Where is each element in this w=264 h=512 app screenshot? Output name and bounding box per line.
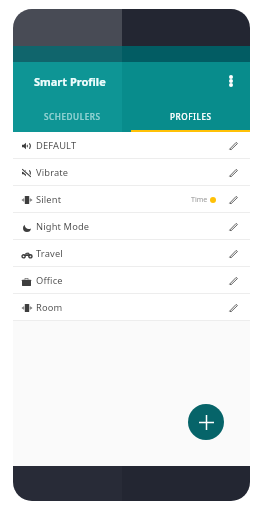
button[interactable]: PROFILES bbox=[131, 100, 250, 132]
staticText: Office bbox=[36, 274, 63, 287]
staticText: Travel bbox=[36, 247, 63, 260]
staticText: Time bbox=[191, 195, 208, 205]
staticText: Vibrate bbox=[36, 166, 69, 179]
staticText: DEFAULT bbox=[36, 139, 77, 152]
button[interactable]: Add profile bbox=[188, 404, 224, 440]
button[interactable]: DEFAULT bbox=[13, 132, 250, 159]
staticText: Night Mode bbox=[36, 220, 90, 233]
button[interactable]: Night Mode bbox=[13, 213, 250, 240]
button[interactable]: More options bbox=[220, 70, 242, 92]
button[interactable]: Travel bbox=[13, 240, 250, 267]
staticText: Room bbox=[36, 301, 63, 314]
staticText: Smart Profile bbox=[34, 74, 106, 89]
button[interactable]: Room bbox=[13, 294, 250, 321]
button[interactable]: Vibrate bbox=[13, 159, 250, 186]
button[interactable]: SCHEDULERS bbox=[13, 100, 131, 132]
button[interactable]: Office bbox=[13, 267, 250, 294]
button[interactable]: Silent bbox=[13, 186, 250, 213]
staticText: PROFILES bbox=[170, 111, 212, 122]
staticText: SCHEDULERS bbox=[44, 111, 101, 122]
staticText: Silent bbox=[36, 193, 62, 206]
